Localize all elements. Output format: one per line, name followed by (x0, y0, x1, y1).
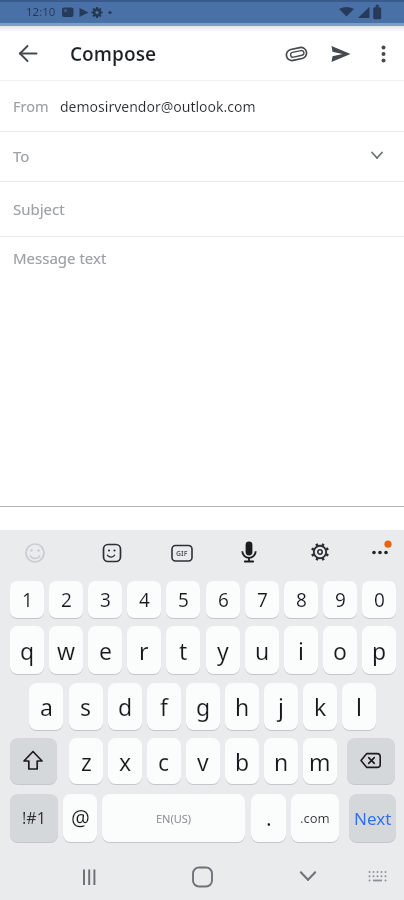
button[interactable]: j (264, 683, 298, 730)
button[interactable] (8, 33, 48, 73)
staticText: q (20, 635, 35, 666)
button[interactable]: r (127, 626, 161, 674)
staticText: 8 (296, 587, 307, 613)
button[interactable]: o (323, 626, 357, 674)
button[interactable]: c (147, 738, 181, 784)
button[interactable]: Message text (13, 246, 173, 270)
staticText: m (309, 746, 331, 777)
button[interactable] (276, 33, 316, 73)
staticText: 2 (61, 587, 72, 613)
staticText: x (119, 746, 132, 777)
staticText: 12:10 (26, 4, 56, 20)
button[interactable] (174, 858, 232, 898)
button[interactable]: !#1 (10, 794, 58, 842)
staticText: o (333, 635, 347, 666)
button[interactable]: w (49, 626, 83, 674)
button[interactable]: y (206, 626, 240, 674)
staticText: k (314, 691, 327, 722)
button[interactable]: n (264, 738, 298, 784)
button[interactable]: x (108, 738, 142, 784)
staticText: w (57, 635, 76, 666)
button[interactable]: f (147, 683, 181, 730)
button[interactable]: 7 (245, 581, 279, 618)
button[interactable]: s (69, 683, 103, 730)
button[interactable]: 9 (323, 581, 357, 618)
button[interactable] (18, 536, 52, 570)
button[interactable]: z (69, 738, 103, 784)
button[interactable]: 2 (49, 581, 83, 618)
staticText: h (235, 691, 250, 722)
button[interactable]: q (10, 626, 44, 674)
button[interactable]: 0 (362, 581, 396, 618)
button[interactable]: m (303, 738, 337, 784)
button[interactable]: l (342, 683, 376, 730)
staticText: Message text (13, 248, 107, 268)
staticText: f (160, 691, 168, 722)
button[interactable]: i (284, 626, 318, 674)
staticText: e (99, 635, 112, 666)
staticText: i (298, 635, 304, 666)
button[interactable]: g (186, 683, 220, 730)
staticText: Next (354, 807, 392, 830)
staticText: 7 (257, 587, 268, 613)
staticText: c (158, 746, 170, 777)
button[interactable] (279, 858, 337, 898)
button[interactable]: 8 (284, 581, 318, 618)
staticText: Subject (13, 199, 65, 219)
staticText: 4 (139, 587, 150, 613)
staticText: From (13, 96, 49, 116)
button[interactable]: To (13, 131, 73, 181)
staticText: b (235, 746, 250, 777)
staticText: EN(US) (156, 811, 192, 826)
staticText: u (255, 635, 270, 666)
button[interactable] (10, 738, 57, 784)
button[interactable]: d (108, 683, 142, 730)
staticText: d (118, 691, 133, 722)
staticText: demosirvendor@outlook.com (60, 97, 256, 116)
button[interactable]: 6 (206, 581, 240, 618)
button[interactable]: h (225, 683, 259, 730)
staticText: 0 (374, 587, 385, 613)
button[interactable]: p (362, 626, 396, 674)
button[interactable] (347, 738, 395, 784)
button[interactable] (321, 33, 361, 73)
button[interactable]: EN(US) (102, 794, 245, 842)
staticText: 6 (218, 587, 229, 613)
button[interactable]: 4 (127, 581, 161, 618)
button[interactable]: @ (63, 794, 97, 842)
staticText: 3 (100, 587, 111, 613)
button[interactable] (165, 536, 199, 570)
staticText: y (217, 635, 229, 666)
button[interactable]: 3 (88, 581, 122, 618)
staticText: To (13, 146, 30, 166)
button[interactable]: b (225, 738, 259, 784)
staticText: Compose (70, 41, 157, 67)
button[interactable]: Subject (13, 182, 133, 235)
staticText: . (266, 804, 272, 833)
button[interactable]: t (166, 626, 200, 674)
button[interactable] (363, 33, 403, 73)
staticText: j (278, 691, 284, 722)
button[interactable] (60, 858, 118, 898)
button[interactable] (303, 536, 337, 570)
staticText: t (179, 635, 188, 666)
staticText: r (139, 635, 149, 666)
button[interactable] (363, 536, 397, 570)
button[interactable]: a (29, 683, 63, 730)
staticText: !#1 (22, 807, 46, 829)
button[interactable]: Next (349, 794, 396, 842)
button[interactable]: k (303, 683, 337, 730)
button[interactable]: 5 (166, 581, 200, 618)
button[interactable]: e (88, 626, 122, 674)
button[interactable]: v (186, 738, 220, 784)
staticText: v (197, 746, 209, 777)
button[interactable]: 1 (10, 581, 44, 618)
button[interactable]: .com (291, 794, 339, 842)
staticText: s (80, 691, 92, 722)
button[interactable]: u (245, 626, 279, 674)
button[interactable] (95, 536, 129, 570)
staticText: n (274, 746, 289, 777)
button[interactable] (232, 536, 266, 570)
button[interactable]: . (251, 794, 286, 842)
staticText: 5 (178, 587, 189, 613)
